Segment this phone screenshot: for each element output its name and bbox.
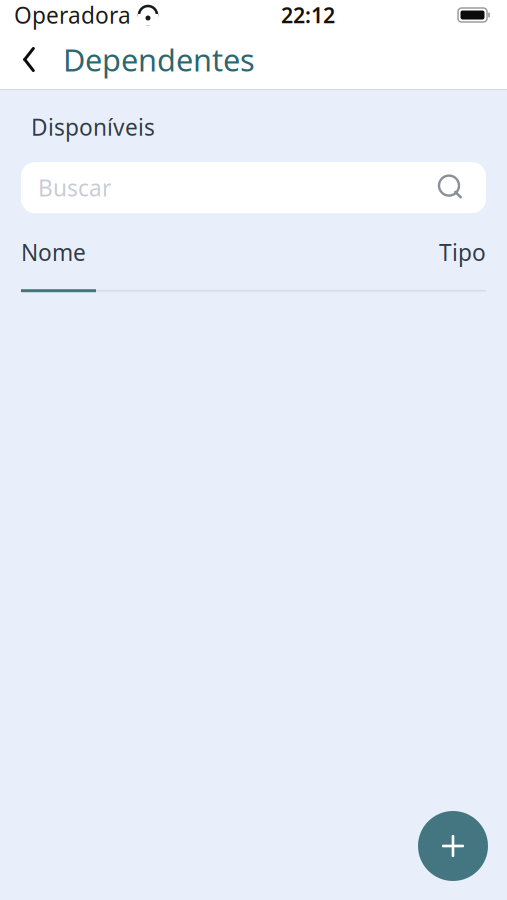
- staticText: Buscar: [38, 173, 111, 203]
- staticText: Tipo: [439, 237, 486, 267]
- button[interactable]: Adicionar dependente: [418, 811, 488, 881]
- button[interactable]: Buscar: [21, 162, 486, 213]
- staticText: Operadora: [14, 0, 131, 30]
- button[interactable]: Nome: [21, 237, 86, 267]
- staticText: Disponíveis: [31, 112, 155, 142]
- button[interactable]: Voltar: [6, 36, 52, 82]
- button[interactable]: Tipo: [439, 237, 486, 267]
- staticText: Nome: [21, 237, 86, 267]
- staticText: Dependentes: [63, 39, 255, 80]
- staticText: 22:12: [281, 1, 335, 29]
